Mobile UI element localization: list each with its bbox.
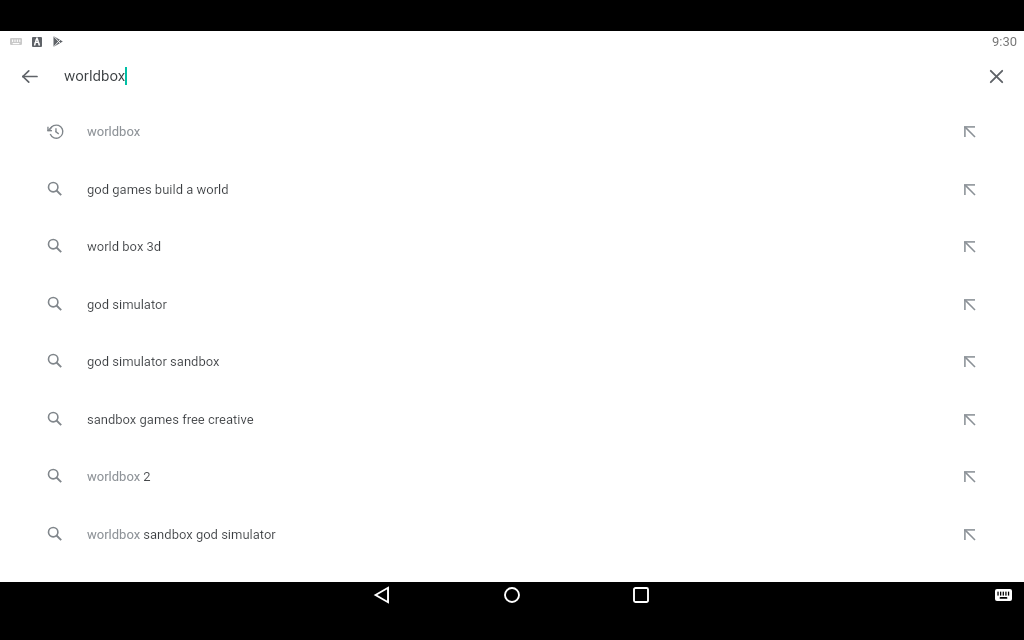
button[interactable]: Back: [358, 571, 406, 619]
staticText: world box 3d: [87, 239, 162, 254]
button[interactable]: Insert suggestion into search box: [957, 349, 981, 373]
button[interactable]: worldbox 2: [0, 447, 1024, 505]
button[interactable]: Home: [488, 571, 536, 619]
staticText: A: [34, 37, 40, 47]
staticText: sandbox games free creative: [87, 412, 254, 427]
staticText: god simulator: [87, 297, 167, 312]
staticText: worldbox sandbox god simulator: [87, 527, 276, 542]
button[interactable]: worldbox sandbox god simulator: [0, 505, 1024, 563]
button[interactable]: Insert suggestion into search box: [957, 177, 981, 201]
staticText: god simulator sandbox: [87, 354, 220, 369]
button[interactable]: god simulator sandbox: [0, 332, 1024, 390]
button[interactable]: sandbox games free creative: [0, 390, 1024, 448]
button[interactable]: Insert suggestion into search box: [957, 464, 981, 488]
button[interactable]: god games build a world: [0, 160, 1024, 218]
button[interactable]: Insert suggestion into search box: [957, 292, 981, 316]
button[interactable]: Clear search: [978, 58, 1014, 94]
button[interactable]: Navigate up: [11, 58, 47, 94]
button[interactable]: Insert suggestion into search box: [957, 407, 981, 431]
staticText: 9:30: [992, 34, 1018, 49]
button[interactable]: worldbox: [0, 102, 1024, 160]
button[interactable]: world box 3d: [0, 217, 1024, 275]
staticText: worldbox: [64, 67, 126, 85]
staticText: worldbox: [87, 124, 141, 139]
button[interactable]: Switch keyboard: [979, 571, 1024, 619]
staticText: worldbox 2: [87, 469, 151, 484]
button[interactable]: Insert suggestion into search box: [957, 119, 981, 143]
button[interactable]: god simulator: [0, 275, 1024, 333]
button[interactable]: Insert suggestion into search box: [957, 234, 981, 258]
button[interactable]: Insert suggestion into search box: [957, 522, 981, 546]
button[interactable]: Recent apps: [617, 571, 665, 619]
staticText: god games build a world: [87, 182, 229, 197]
